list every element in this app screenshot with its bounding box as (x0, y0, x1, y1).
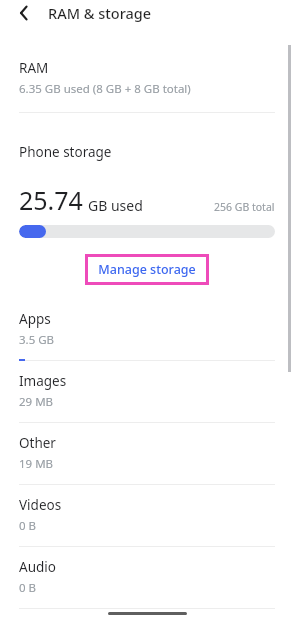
button[interactable]: Back (11, 0, 37, 26)
staticText: RAM (19, 59, 49, 77)
button[interactable]: Manage storage (85, 254, 209, 285)
button[interactable]: Other (0, 423, 294, 485)
staticText: 29 MB (19, 394, 54, 410)
staticText: 6.35 GB used (8 GB + 8 GB total) (19, 81, 191, 97)
button[interactable]: RAM (0, 42, 294, 113)
staticText: Apps (19, 310, 51, 328)
button[interactable]: Audio (0, 547, 294, 609)
staticText: GB used (88, 196, 143, 215)
staticText: 19 MB (19, 456, 54, 472)
staticText: Manage storage (98, 261, 196, 278)
staticText: 3.5 GB (19, 332, 55, 348)
staticText: 25.74 (19, 183, 83, 217)
staticText: Videos (19, 496, 62, 514)
button[interactable]: Apps (0, 299, 294, 361)
button[interactable]: Images (0, 361, 294, 423)
staticText: Audio (19, 558, 56, 576)
staticText: Phone storage (19, 143, 112, 161)
staticText: 256 GB total (214, 200, 275, 214)
staticText: RAM & storage (48, 3, 152, 23)
staticText: Images (19, 372, 67, 390)
staticText: Other (19, 434, 56, 452)
staticText: 0 B (19, 580, 37, 596)
button[interactable]: Videos (0, 485, 294, 547)
staticText: 0 B (19, 518, 37, 534)
